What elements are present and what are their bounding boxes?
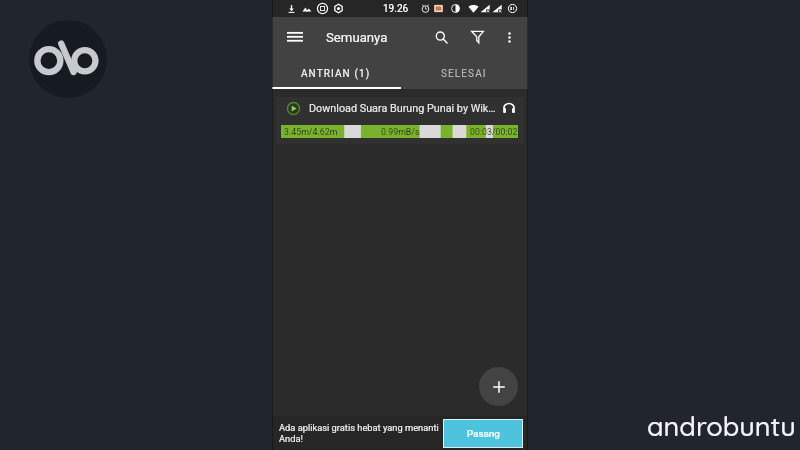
staticText: Pasang xyxy=(467,428,500,439)
button[interactable]: Filter xyxy=(462,22,493,53)
staticText: 0.99mB/s xyxy=(381,127,420,137)
staticText: 19.26 xyxy=(383,3,409,15)
button[interactable]: SELESAI xyxy=(400,57,528,89)
button[interactable]: Pasang xyxy=(444,420,522,447)
button[interactable]: Add download xyxy=(479,367,518,406)
staticText: androbuntu xyxy=(647,409,796,443)
button[interactable]: Download Suara Burung Punai by Wik… xyxy=(276,97,524,144)
staticText: SELESAI xyxy=(441,68,487,80)
staticText: ANTRIAN (1) xyxy=(301,68,371,80)
staticText: Ada aplikasi gratis hebat yang menanti A… xyxy=(279,422,439,444)
button[interactable]: ANTRIAN (1) xyxy=(272,57,400,89)
staticText: 3.45m/4.62m xyxy=(284,127,338,137)
button[interactable]: Search xyxy=(428,22,459,53)
staticText: 00:03/00:02 xyxy=(470,127,518,137)
staticText: Download Suara Burung Punai by Wik… xyxy=(309,102,498,115)
staticText: Semuanya xyxy=(326,30,388,45)
button[interactable]: More options xyxy=(495,23,523,51)
button[interactable]: Menu xyxy=(277,19,313,55)
